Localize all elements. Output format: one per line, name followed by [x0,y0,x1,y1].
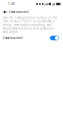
staticText: Use the Camera Control button on the sid… [3,16,58,34]
staticText: Camera control [3,36,23,40]
button[interactable]: Back [3,10,7,14]
staticText: Camera control [9,10,29,14]
button[interactable]: Camera control [0,35,63,41]
staticText: 1:38 [8,2,15,6]
